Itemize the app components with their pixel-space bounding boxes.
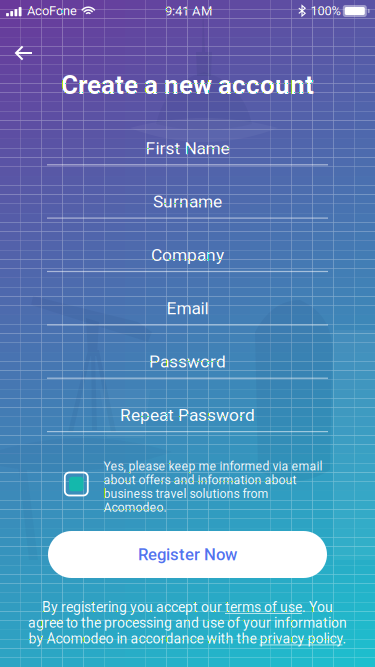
- button[interactable]: Company: [47, 238, 328, 274]
- button[interactable]: Surname: [47, 185, 328, 221]
- staticText: Surname: [153, 191, 222, 212]
- staticText: By registering you accept our terms of u…: [42, 599, 333, 615]
- staticText: AcoFone: [27, 3, 77, 18]
- staticText: Yes, please keep me informed via email: [103, 459, 322, 473]
- button[interactable]: Keep me informed about offers: [61, 469, 91, 499]
- staticText: Repeat Password: [120, 405, 255, 425]
- staticText: agree to the processing and use of your …: [28, 615, 347, 631]
- staticText: First Name: [145, 138, 229, 158]
- staticText: about offers and information about: [103, 473, 296, 487]
- staticText: 100%: [311, 3, 341, 18]
- staticText: by Acomodeo in accordance with the priva…: [28, 631, 346, 647]
- staticText: business travel solutions from: [103, 487, 268, 501]
- staticText: Email: [166, 298, 208, 318]
- button[interactable]: Back: [4, 36, 44, 70]
- button[interactable]: Password: [47, 345, 328, 381]
- staticText: Password: [149, 351, 226, 372]
- staticText: 9:41 AM: [165, 3, 212, 19]
- button[interactable]: Register Now: [48, 531, 327, 578]
- staticText: Register Now: [138, 545, 237, 564]
- button[interactable]: Repeat Password: [47, 398, 328, 434]
- button[interactable]: Email: [47, 291, 328, 327]
- button[interactable]: First Name: [47, 131, 328, 167]
- staticText: Acomodeo.: [103, 500, 166, 515]
- staticText: Create a new account: [61, 70, 314, 100]
- staticText: Company: [151, 245, 224, 265]
